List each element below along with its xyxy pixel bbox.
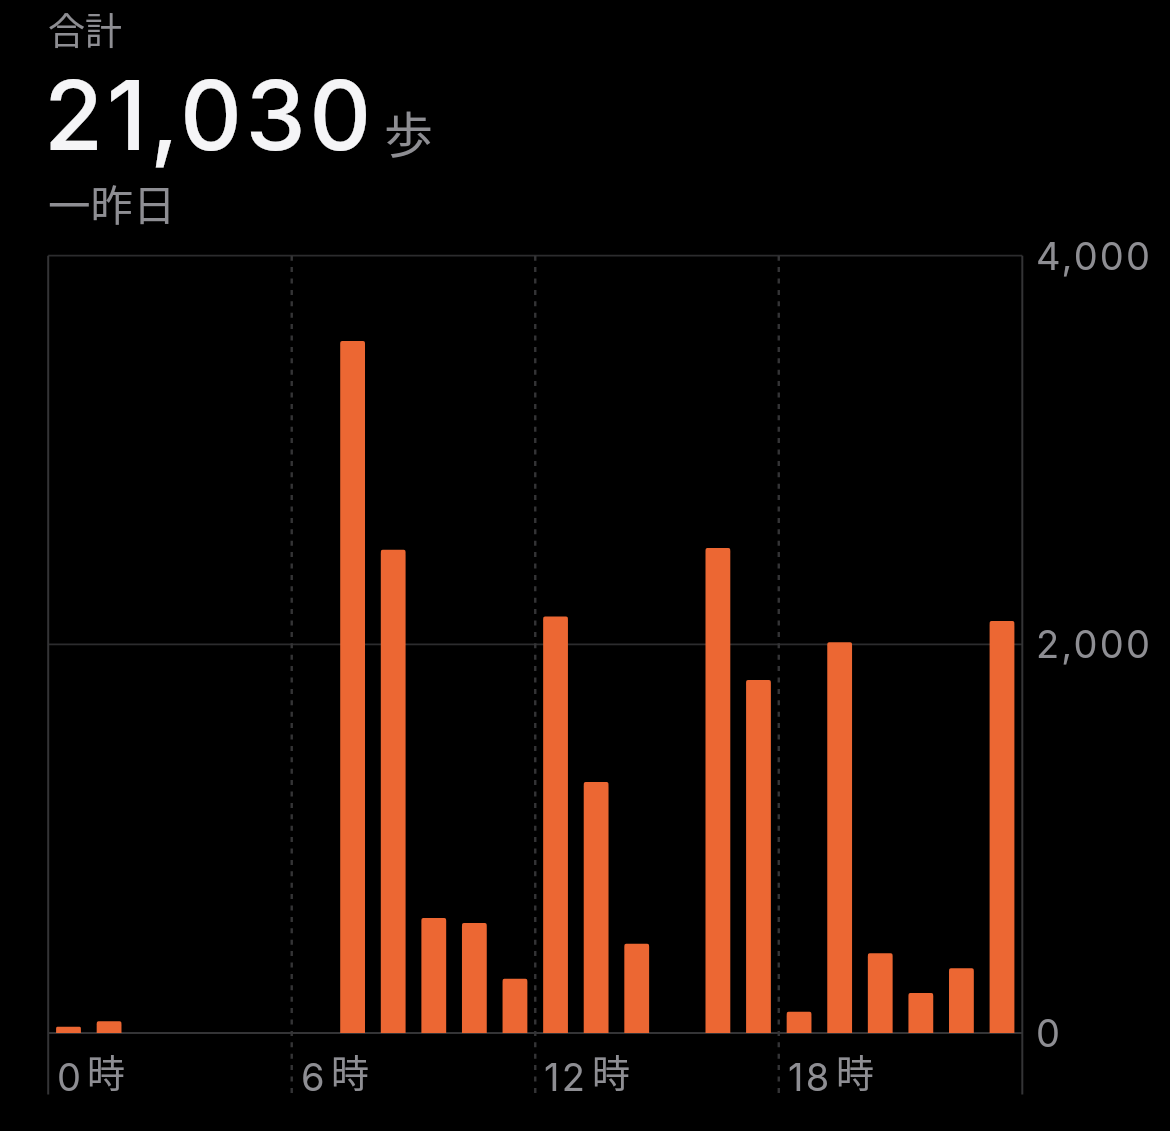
staticText: 時 (592, 1043, 631, 1098)
button[interactable]: 16時台の歩数 (698, 256, 739, 1033)
button[interactable]: 5時台の歩数 (251, 256, 292, 1033)
staticText: 時 (87, 1043, 126, 1098)
button[interactable]: 20時台の歩数 (860, 256, 901, 1033)
staticText: 歩 (384, 96, 434, 167)
staticText: 4,000 (1036, 233, 1153, 279)
button[interactable]: 合計 (0, 0, 1170, 240)
button[interactable]: 9時台の歩数 (413, 256, 454, 1033)
staticText: 合計 (48, 2, 122, 56)
button[interactable]: 19時台の歩数 (819, 256, 860, 1033)
button[interactable]: 10時台の歩数 (454, 256, 495, 1033)
staticText: 0 (57, 1054, 84, 1100)
button[interactable]: 18時台の歩数 (779, 256, 820, 1033)
button[interactable]: 8時台の歩数 (373, 256, 414, 1033)
button[interactable]: 7時台の歩数 (332, 256, 373, 1033)
staticText: 時 (836, 1043, 875, 1098)
staticText: 6 (301, 1054, 327, 1100)
staticText: 一昨日 (48, 172, 176, 234)
button[interactable]: 0時台の歩数 (48, 256, 89, 1033)
button[interactable]: 14時台の歩数 (616, 256, 657, 1033)
button[interactable]: 12時台の歩数 (535, 256, 576, 1033)
staticText: 21,030 (44, 57, 375, 173)
button[interactable]: 13時台の歩数 (576, 256, 617, 1033)
button[interactable]: 1時台の歩数 (89, 256, 130, 1033)
button[interactable]: 11時台の歩数 (495, 256, 536, 1033)
staticText: 0 (1036, 1010, 1063, 1056)
button[interactable]: 17時台の歩数 (738, 256, 779, 1033)
button[interactable]: 23時台の歩数 (982, 256, 1023, 1033)
staticText: 2,000 (1036, 621, 1153, 667)
button[interactable]: 22時台の歩数 (941, 256, 982, 1033)
staticText: 18 (788, 1054, 832, 1100)
button[interactable]: 6時台の歩数 (292, 256, 333, 1033)
button[interactable]: 21時台の歩数 (901, 256, 942, 1033)
staticText: 12 (544, 1054, 588, 1100)
staticText: 時 (331, 1043, 370, 1098)
